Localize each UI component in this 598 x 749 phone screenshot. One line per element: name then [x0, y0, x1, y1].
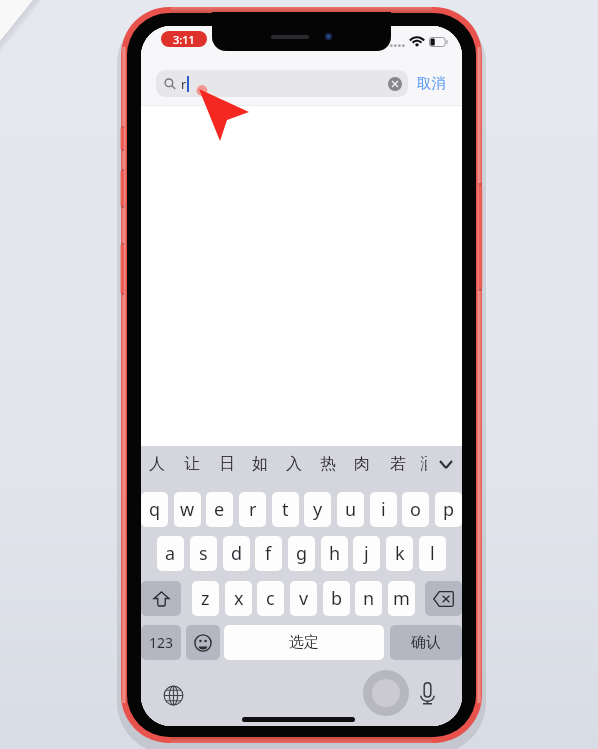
button[interactable]: l [419, 536, 446, 571]
staticText: r [181, 75, 187, 93]
staticText: c [266, 586, 275, 611]
button[interactable]: Change keyboard [161, 683, 185, 707]
button[interactable]: 洒 [421, 449, 427, 479]
button[interactable]: Dictation [414, 680, 440, 706]
button[interactable]: q [141, 492, 168, 527]
button[interactable]: 热 [312, 449, 344, 479]
button[interactable]: 肉 [346, 449, 378, 479]
staticText: g [296, 541, 308, 566]
button[interactable]: a [157, 536, 184, 571]
button[interactable]: 取消 [417, 72, 446, 94]
button[interactable]: r [239, 492, 266, 527]
button[interactable]: 入 [278, 449, 310, 479]
button[interactable]: m [388, 581, 415, 616]
button[interactable]: g [288, 536, 315, 571]
button[interactable]: y [304, 492, 331, 527]
staticText: 3:11 [173, 32, 195, 47]
staticText: 日 [219, 454, 235, 474]
staticText: a [165, 541, 176, 566]
button[interactable]: p [435, 492, 462, 527]
button[interactable]: c [257, 581, 284, 616]
staticText: l [430, 541, 435, 566]
staticText: q [149, 497, 161, 522]
button[interactable]: Backspace [425, 581, 462, 616]
staticText: u [345, 497, 357, 522]
button[interactable]: More candidates [435, 452, 457, 476]
button[interactable]: Shift [141, 581, 181, 616]
button[interactable]: 人 [141, 449, 173, 479]
button[interactable]: i [370, 492, 397, 527]
button[interactable]: d [223, 536, 250, 571]
staticText: k [395, 541, 405, 566]
button[interactable]: 若 [382, 449, 414, 479]
staticText: y [313, 497, 323, 522]
button[interactable]: b [323, 581, 350, 616]
staticText: 热 [320, 454, 336, 474]
button[interactable]: e [206, 492, 233, 527]
staticText: 肉 [354, 454, 370, 474]
button[interactable]: Emoji [186, 625, 220, 660]
staticText: r [249, 497, 257, 522]
staticText: 如 [252, 454, 268, 474]
button[interactable]: v [290, 581, 317, 616]
staticText: o [410, 497, 421, 522]
staticText: n [363, 586, 375, 611]
button[interactable]: 让 [176, 449, 208, 479]
staticText: p [443, 497, 455, 522]
button[interactable]: r [156, 70, 408, 97]
button[interactable]: k [386, 536, 413, 571]
staticText: b [331, 586, 343, 611]
staticText: v [299, 586, 309, 611]
staticText: 让 [184, 454, 200, 474]
button[interactable]: n [355, 581, 382, 616]
staticText: 确认 [411, 633, 441, 652]
staticText: 选定 [289, 633, 319, 652]
button[interactable]: f [255, 536, 282, 571]
staticText: j [364, 541, 369, 566]
staticText: 若 [390, 454, 406, 474]
staticText: h [329, 541, 341, 566]
button[interactable]: t [272, 492, 299, 527]
button[interactable]: h [321, 536, 348, 571]
staticText: z [201, 586, 210, 611]
button[interactable]: 3:11 [161, 31, 207, 47]
button[interactable]: z [192, 581, 219, 616]
button[interactable]: x [225, 581, 252, 616]
staticText: x [234, 586, 244, 611]
button[interactable]: 确认 [390, 625, 462, 660]
button[interactable]: o [402, 492, 429, 527]
staticText: 入 [286, 454, 302, 474]
staticText: f [265, 541, 272, 566]
button[interactable]: u [337, 492, 364, 527]
staticText: i [381, 497, 386, 522]
button[interactable]: 日 [211, 449, 243, 479]
staticText: 洒 [421, 454, 426, 474]
button[interactable]: s [190, 536, 217, 571]
staticText: 取消 [417, 74, 446, 92]
staticText: 人 [149, 454, 165, 474]
button[interactable]: w [174, 492, 201, 527]
staticText: t [282, 497, 289, 522]
staticText: w [180, 497, 195, 522]
button[interactable]: 如 [244, 449, 276, 479]
button[interactable]: j [353, 536, 380, 571]
staticText: m [393, 586, 410, 611]
staticText: d [231, 541, 243, 566]
staticText: 123 [149, 633, 174, 652]
button[interactable]: Clear text [388, 77, 402, 91]
button[interactable]: 123 [141, 625, 181, 660]
staticText: s [199, 541, 208, 566]
button[interactable]: 选定 [224, 625, 384, 660]
staticText: e [214, 497, 225, 522]
